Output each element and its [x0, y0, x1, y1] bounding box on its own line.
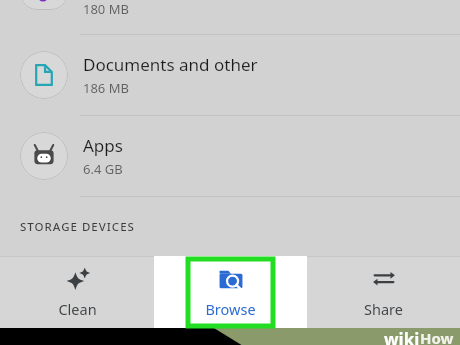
button[interactable]: Share: [307, 256, 460, 328]
button[interactable]: Browse: [154, 256, 307, 328]
staticText: STORAGE DEVICES: [20, 219, 135, 235]
staticText: 180 MB: [83, 0, 129, 18]
button[interactable]: Documents and other: [0, 35, 460, 115]
staticText: wiki: [384, 328, 420, 345]
staticText: Apps: [83, 134, 123, 157]
button[interactable]: Apps: [0, 116, 460, 196]
staticText: 186 MB: [83, 79, 129, 97]
staticText: Share: [364, 299, 403, 319]
staticText: Clean: [58, 299, 97, 319]
button[interactable]: Clean: [0, 256, 154, 328]
staticText: How: [420, 328, 454, 345]
staticText: Browse: [205, 299, 256, 319]
staticText: 6.4 GB: [83, 160, 123, 178]
staticText: Documents and other: [83, 53, 258, 76]
